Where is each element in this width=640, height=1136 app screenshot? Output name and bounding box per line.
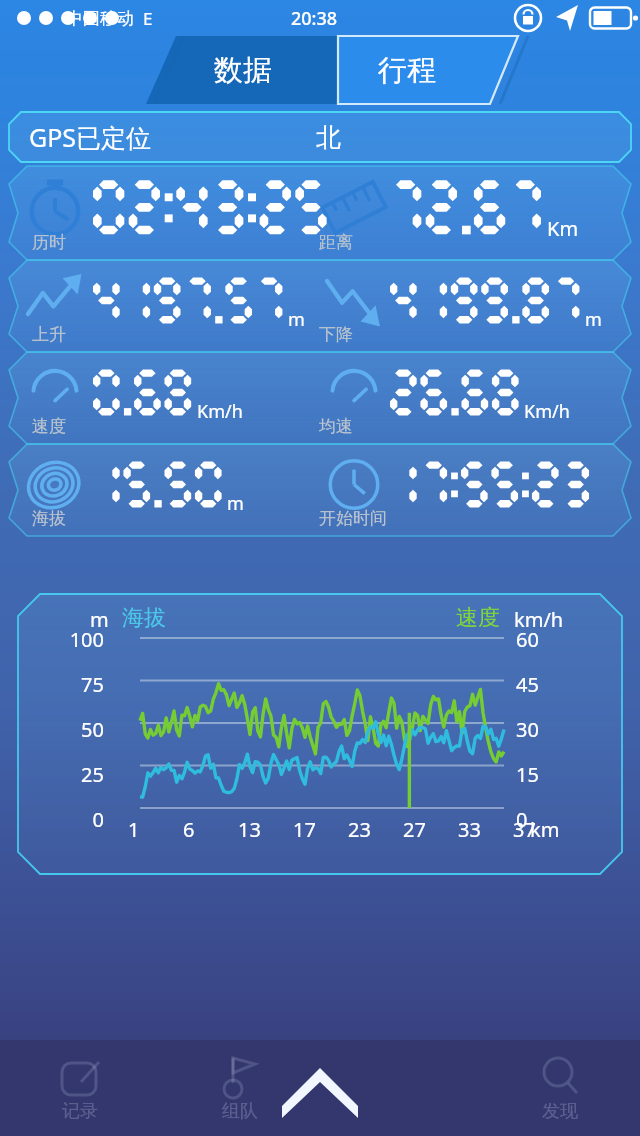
button[interactable]: 行程 [357,36,457,104]
staticText: 25 [48,761,104,788]
staticText: 下降 [319,324,353,345]
staticText: 13 [238,816,261,843]
staticText: 17 [293,816,316,843]
staticText: 开始时间 [319,508,387,529]
button[interactable]: 展开 [320,1040,480,1136]
button[interactable]: m [18,594,622,874]
button[interactable]: Km [9,166,631,260]
staticText: m [288,307,305,332]
button[interactable]: GPS已定位 [9,112,631,162]
staticText: GPS已定位 [29,120,152,154]
staticText: 上升 [32,324,66,345]
staticText: 0 [48,806,104,833]
staticText: 37 [513,816,536,843]
staticText: 60 [516,626,539,653]
staticText: 50 [48,716,104,743]
staticText: Km [547,215,579,242]
staticText: 组队 [222,1100,258,1123]
staticText: km/h [514,606,564,633]
staticText: 历时 [32,232,66,253]
staticText: 100 [48,626,104,653]
staticText: 发现 [542,1100,578,1123]
staticText: 6 [183,816,195,843]
staticText: E [143,7,153,30]
staticText: m [585,307,602,332]
staticText: 15 [516,761,539,788]
staticText: 中国移动 [66,8,134,29]
staticText: 23 [348,816,371,843]
staticText: 1 [128,816,140,843]
staticText: m [227,491,244,516]
staticText: Km/h [524,399,570,424]
staticText: 20:38 [291,6,338,31]
staticText: 记录 [62,1100,98,1123]
button[interactable]: 记录 [0,1040,160,1136]
staticText: 速度 [456,604,500,632]
staticText: 行程 [378,52,436,89]
staticText: 北 [316,122,341,153]
staticText: 距离 [319,232,353,253]
staticText: 75 [48,671,104,698]
staticText: 33 [458,816,481,843]
staticText: 海拔 [32,508,66,529]
staticText: 27 [403,816,426,843]
button[interactable]: Km/h [9,352,631,444]
staticText: m [90,606,109,633]
button[interactable]: 组队 [160,1040,320,1136]
staticText: km [530,816,560,843]
staticText: 均速 [319,416,353,437]
staticText: Km/h [197,399,243,424]
button[interactable]: m [9,260,631,352]
staticText: 数据 [214,52,272,89]
staticText: 0 [516,806,528,833]
staticText: 30 [516,716,539,743]
staticText: 45 [516,671,539,698]
staticText: 海拔 [122,604,166,632]
button[interactable]: 数据 [193,36,293,104]
staticText: 速度 [32,416,66,437]
button[interactable]: m [9,444,631,536]
button[interactable]: 发现 [480,1040,640,1136]
